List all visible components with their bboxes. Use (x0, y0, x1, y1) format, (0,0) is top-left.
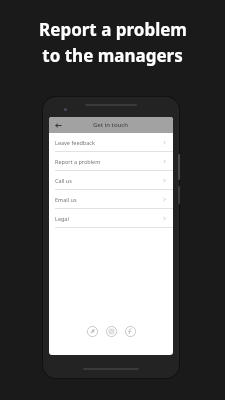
staticText: Email us (55, 196, 77, 203)
button[interactable]: Leave feedback (49, 133, 173, 152)
button[interactable]: Call us (49, 171, 173, 190)
button[interactable]: Email us (49, 190, 173, 209)
staticText: Leave feedback (55, 139, 95, 146)
staticText: Legal (55, 215, 69, 222)
staticText: to the managers (42, 44, 183, 67)
staticText: Report a problem (55, 158, 101, 165)
button[interactable]: Legal (49, 209, 173, 228)
button[interactable]: Facebook (125, 326, 136, 337)
staticText: Get in touch (93, 121, 129, 129)
button[interactable]: Back (53, 120, 63, 130)
staticText: Report a problem (39, 18, 187, 41)
button[interactable]: Instagram (106, 326, 117, 337)
button[interactable]: Report a problem (49, 152, 173, 171)
button[interactable]: Twitter (87, 326, 98, 337)
staticText: Call us (55, 177, 72, 184)
